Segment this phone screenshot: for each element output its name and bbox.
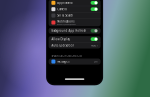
- staticText: Camera: [57, 7, 66, 11]
- staticText: Allow Display: [51, 37, 69, 41]
- staticText: Never: [91, 44, 98, 47]
- button[interactable]: Siri & Search: [49, 12, 101, 18]
- staticText: Siri & Search: [57, 14, 73, 17]
- button[interactable]: Notifications: [49, 19, 101, 26]
- button[interactable]: Auto-Lock Screen: [49, 42, 101, 48]
- button[interactable]: Appearance: [49, 0, 101, 6]
- button[interactable]: Messages: [49, 58, 101, 64]
- staticText: On: [94, 60, 98, 63]
- staticText: Messages: [57, 60, 69, 63]
- staticText: Auto-Lock Screen: [51, 44, 74, 47]
- staticText: Appearance: [57, 1, 73, 5]
- staticText: Banners, Sounds, Badges: [57, 23, 76, 25]
- button[interactable]: Allow Display: [49, 36, 101, 42]
- staticText: Notifications: [57, 20, 74, 23]
- staticText: Background App Refresh: [51, 29, 86, 32]
- button[interactable]: Background App Refresh: [49, 28, 101, 34]
- button[interactable]: Camera: [49, 6, 101, 12]
- staticText: SHARE ACROSS DEVICES: [51, 54, 81, 58]
